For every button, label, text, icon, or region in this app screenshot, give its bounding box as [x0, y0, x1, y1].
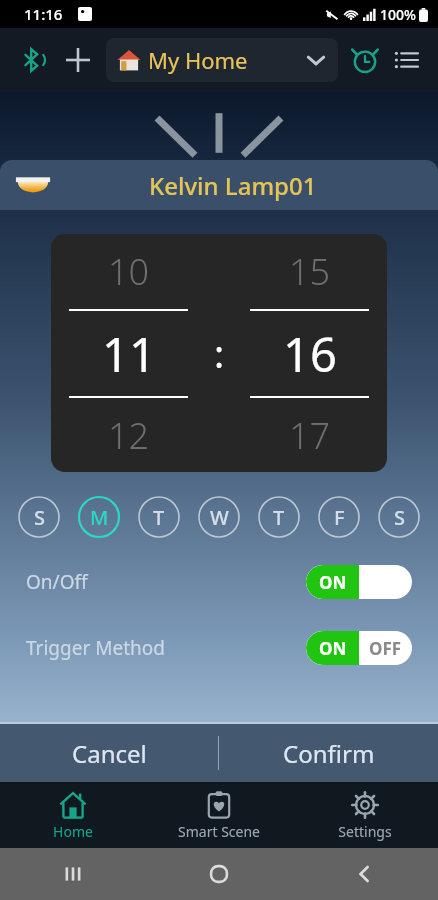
button[interactable]: 12: [51, 398, 206, 472]
button[interactable]: Smart Scene: [146, 782, 292, 848]
staticText: ON: [319, 571, 347, 594]
staticText: ON: [319, 637, 347, 660]
button[interactable]: Back: [292, 848, 438, 900]
button[interactable]: Home: [0, 782, 146, 848]
staticText: OFF: [369, 637, 402, 660]
staticText: Trigger Method: [26, 635, 165, 661]
button[interactable]: 10: [51, 234, 206, 309]
button[interactable]: S: [376, 494, 422, 540]
button[interactable]: W: [196, 494, 242, 540]
button[interactable]: List: [386, 40, 426, 80]
button[interactable]: Confirm: [219, 724, 438, 782]
button[interactable]: Bluetooth: [12, 40, 52, 80]
staticText: S: [394, 504, 405, 531]
button[interactable]: T: [256, 494, 302, 540]
button[interactable]: Trigger Method: [0, 626, 438, 670]
staticText: T: [273, 504, 285, 531]
button[interactable]: Alarm: [344, 39, 386, 81]
staticText: S: [34, 504, 45, 531]
staticText: Settings: [338, 822, 392, 841]
staticText: 11: [102, 322, 156, 386]
staticText: 16: [283, 322, 337, 386]
staticText: Smart Scene: [178, 822, 260, 841]
staticText: :: [214, 327, 225, 379]
staticText: Home: [53, 822, 93, 841]
button[interactable]: 16: [232, 311, 387, 396]
staticText: W: [210, 504, 229, 531]
button[interactable]: 17: [232, 398, 387, 472]
staticText: 15: [289, 247, 331, 296]
staticText: 10: [108, 247, 150, 296]
button[interactable]: 15: [232, 234, 387, 309]
staticText: My Home: [148, 45, 248, 75]
staticText: M: [90, 504, 109, 531]
staticText: 17: [289, 411, 331, 460]
button[interactable]: F: [316, 494, 362, 540]
button[interactable]: 11: [51, 311, 206, 396]
button[interactable]: M: [76, 494, 122, 540]
staticText: 11:16: [24, 4, 63, 24]
staticText: Confirm: [283, 737, 375, 770]
button[interactable]: Add: [58, 40, 98, 80]
button[interactable]: S: [16, 494, 62, 540]
staticText: On/Off: [26, 569, 88, 595]
button[interactable]: Cancel: [0, 724, 218, 782]
staticText: Cancel: [72, 737, 147, 770]
staticText: 12: [108, 411, 150, 460]
button[interactable]: Recents: [0, 848, 146, 900]
staticText: T: [153, 504, 165, 531]
staticText: Kelvin Lamp01: [149, 169, 317, 202]
button[interactable]: Home: [146, 848, 292, 900]
button[interactable]: My Home: [106, 38, 338, 82]
button[interactable]: T: [136, 494, 182, 540]
staticText: F: [334, 504, 345, 531]
button[interactable]: Settings: [292, 782, 438, 848]
staticText: 100%: [380, 5, 416, 24]
button[interactable]: On/Off: [0, 560, 438, 604]
button[interactable]: Kelvin Lamp01: [0, 160, 438, 210]
